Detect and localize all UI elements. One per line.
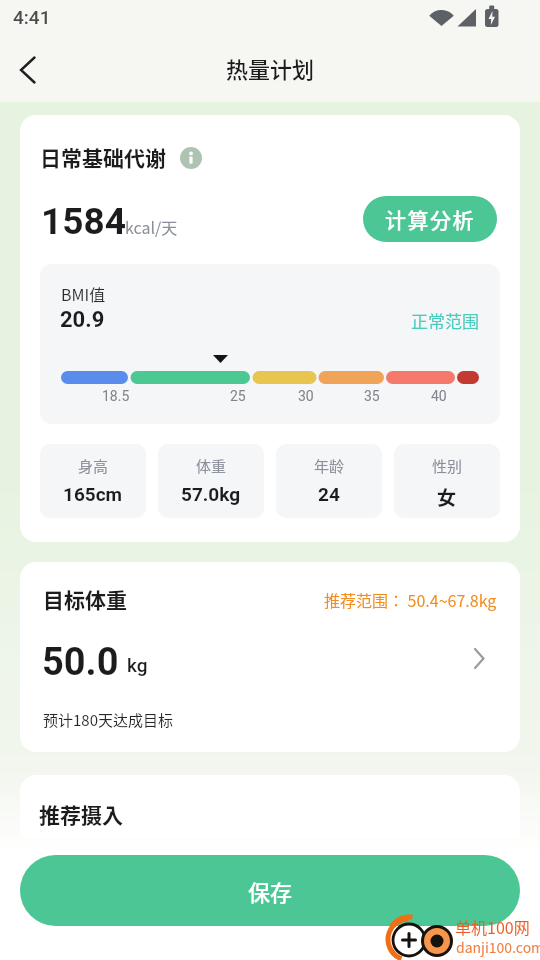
staticText: 18.5 (102, 388, 130, 404)
staticText: 4:41 (13, 6, 51, 28)
staticText: 57.0kg (181, 483, 241, 505)
staticText: 性别 (432, 455, 463, 477)
staticText: 24 (318, 483, 340, 505)
button[interactable]: 体重 (158, 444, 264, 518)
staticText: 1584 (41, 200, 126, 243)
staticText: 推荐摄入 (39, 799, 123, 829)
button[interactable]: 目标体重 (20, 562, 520, 752)
staticText: 推荐范围： 50.4~67.8kg (324, 588, 497, 611)
staticText: 单机100网 (455, 915, 530, 938)
staticText: 165cm (63, 483, 123, 505)
staticText: 计算分析 (385, 204, 475, 234)
staticText: 20.9 (60, 307, 105, 333)
staticText: 预计180天达成目标 (43, 709, 173, 731)
staticText: danji100.com (456, 937, 540, 957)
button[interactable]: 计算分析 (363, 196, 497, 242)
staticText: 25 (230, 388, 246, 404)
staticText: 保存 (248, 875, 293, 907)
staticText: 目标体重 (43, 584, 127, 614)
staticText: 40 (431, 388, 447, 404)
staticText: 女 (437, 483, 457, 511)
staticText: 35 (364, 388, 380, 404)
button[interactable]: 保存 (20, 855, 520, 926)
staticText: 热量计划 (226, 52, 315, 84)
button[interactable]: 年龄 (276, 444, 382, 518)
staticText: 年龄 (314, 455, 345, 477)
button[interactable]: 性别 (394, 444, 500, 518)
staticText: 体重 (196, 455, 227, 477)
staticText: kcal/天 (125, 215, 178, 238)
staticText: 30 (298, 388, 314, 404)
staticText: 50.0 (42, 640, 119, 685)
button[interactable] (8, 49, 48, 89)
staticText: 日常基础代谢 (40, 142, 166, 172)
staticText: kg (127, 654, 148, 676)
button[interactable]: 身高 (40, 444, 146, 518)
staticText: 正常范围 (411, 308, 479, 333)
staticText: BMI值 (61, 282, 106, 305)
staticText: 身高 (78, 455, 109, 477)
